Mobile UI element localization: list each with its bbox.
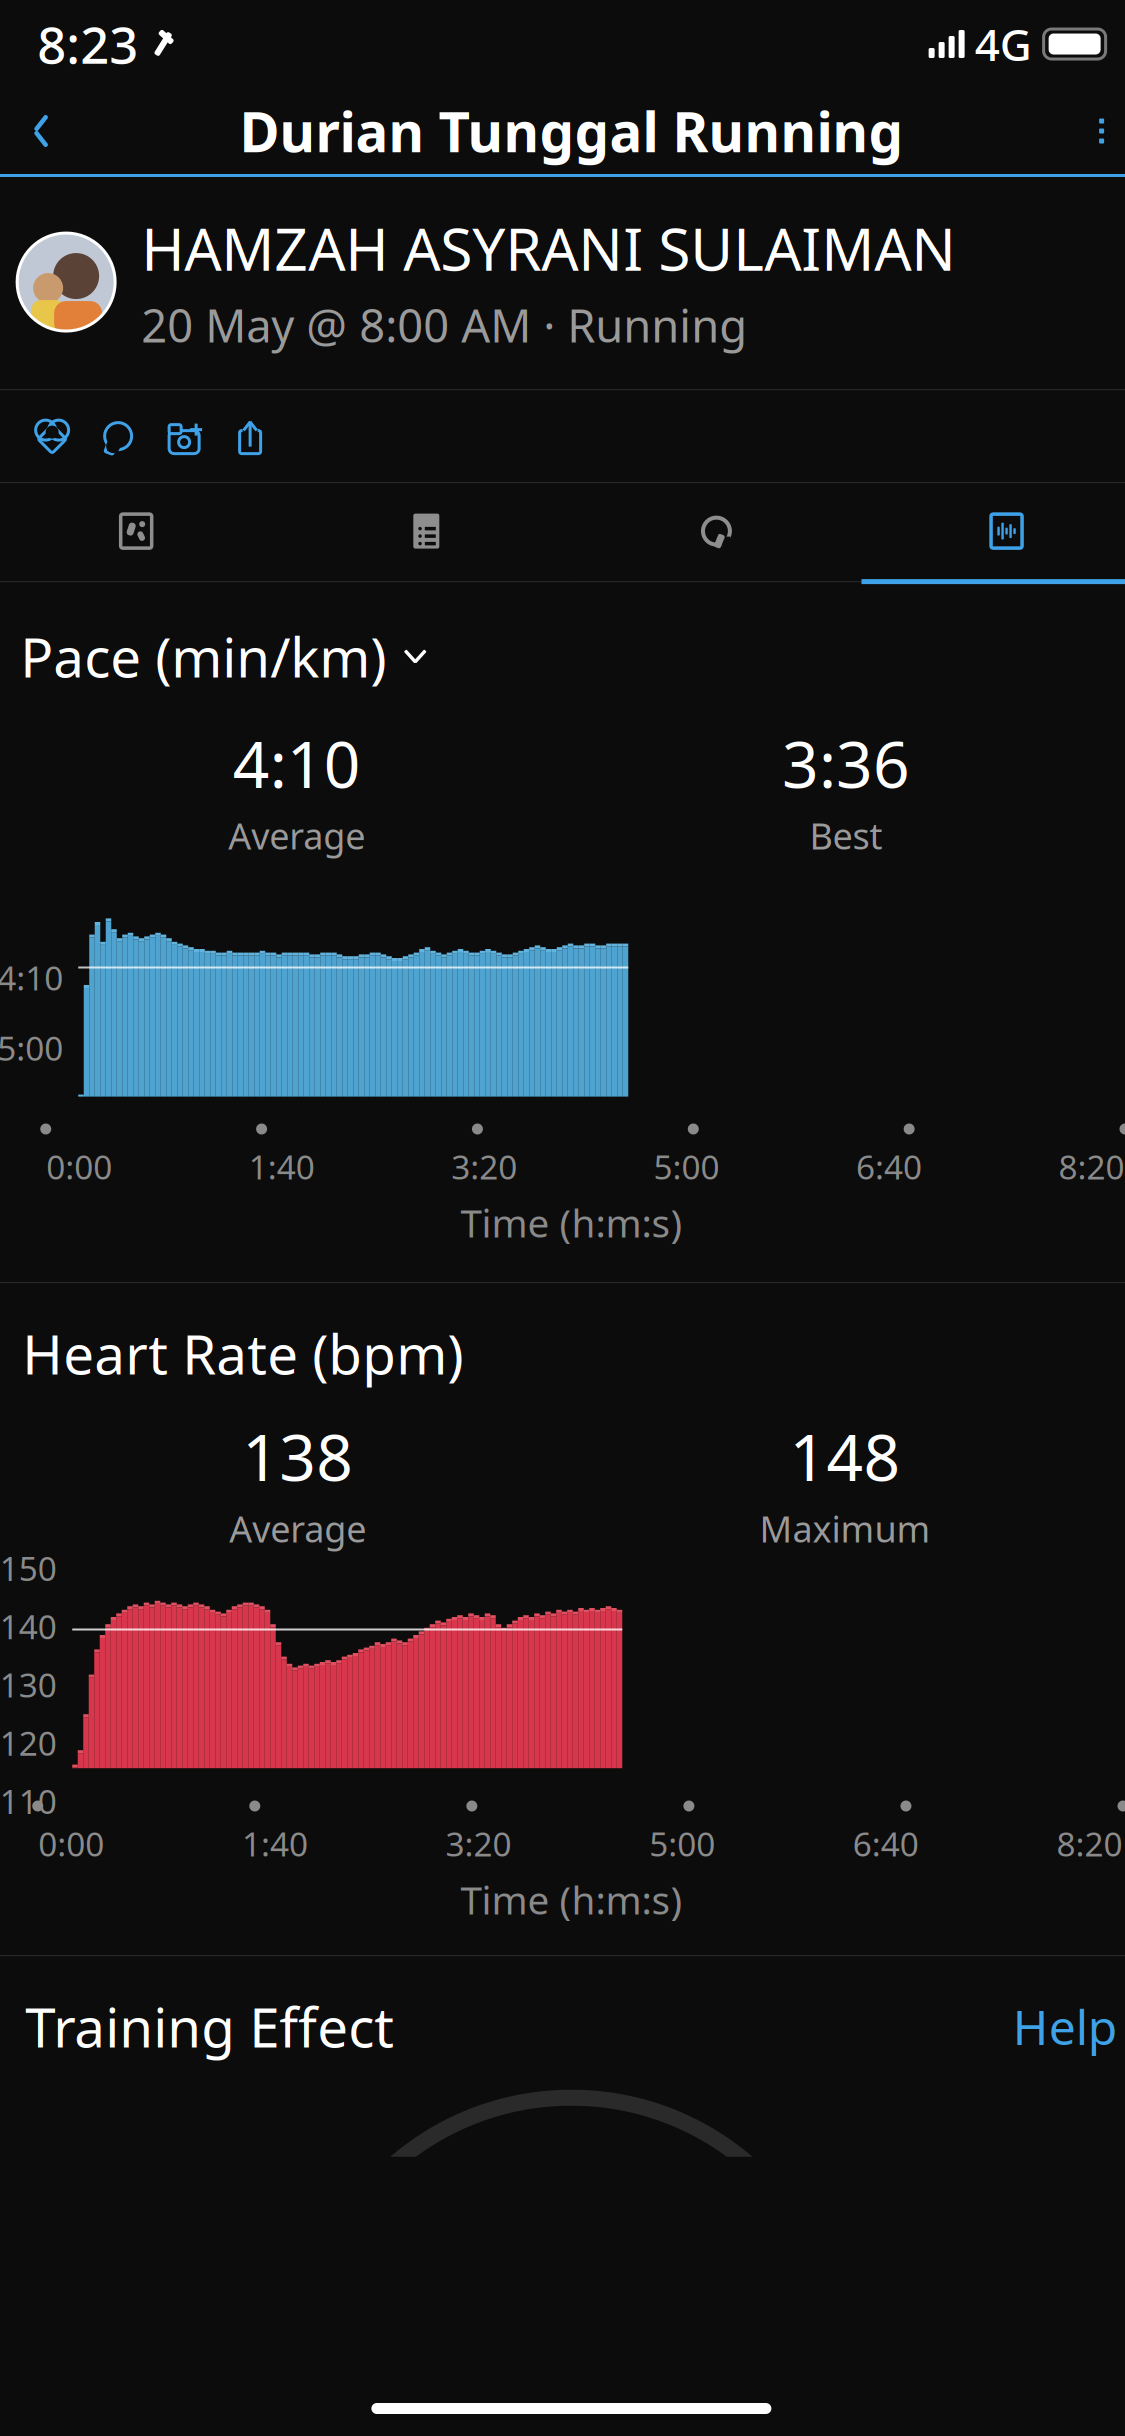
- staticText: 0:00: [46, 1144, 112, 1189]
- button[interactable]: Give kudos: [19, 393, 85, 479]
- staticText: 110: [0, 1779, 57, 1823]
- staticText: 6:40: [853, 1821, 919, 1866]
- button[interactable]: Add photo: [151, 393, 217, 479]
- staticText: Average: [228, 812, 365, 859]
- staticText: 5:00: [649, 1821, 715, 1866]
- staticText: Durian Tunggal Running: [239, 95, 903, 167]
- button[interactable]: Share: [217, 393, 283, 479]
- staticText: 6:40: [856, 1144, 922, 1189]
- staticText: 140: [0, 1604, 57, 1648]
- staticText: 0:00: [38, 1821, 104, 1866]
- button[interactable]: Comment: [85, 393, 151, 479]
- staticText: 5:00: [654, 1144, 720, 1189]
- button[interactable]: Charts: [861, 483, 1125, 579]
- staticText: 3:20: [451, 1144, 517, 1189]
- staticText: Average: [229, 1505, 366, 1552]
- staticText: Time (h:m:s): [460, 1197, 682, 1248]
- staticText: Help: [1013, 1994, 1118, 2058]
- button[interactable]: Map: [0, 483, 281, 579]
- button[interactable]: Help: [1013, 1994, 1118, 2058]
- staticText: 1:40: [249, 1144, 315, 1189]
- staticText: 20 May @ 8:00 AM · Running: [141, 295, 747, 355]
- staticText: Pace (min/km): [20, 620, 386, 693]
- staticText: HAMZAH ASYRANI SULAIMAN: [141, 209, 956, 287]
- staticText: 8:20: [1058, 1144, 1124, 1189]
- staticText: 4:10: [0, 955, 63, 1000]
- staticText: Time (h:m:s): [460, 1874, 682, 1925]
- staticText: 148: [789, 1414, 900, 1499]
- staticText: Best: [809, 812, 882, 859]
- button[interactable]: Pace (min/km): [0, 584, 1125, 703]
- staticText: 8:20: [1056, 1821, 1122, 1866]
- staticText: 8:23: [37, 10, 138, 78]
- staticText: 150: [0, 1546, 57, 1590]
- button[interactable]: Laps: [571, 483, 861, 579]
- staticText: 120: [0, 1721, 57, 1765]
- staticText: 1:40: [242, 1821, 308, 1866]
- staticText: 4G: [975, 15, 1032, 73]
- button[interactable]: Back: [0, 88, 87, 174]
- button[interactable]: More options: [1056, 88, 1125, 174]
- staticText: 5:00: [0, 1026, 63, 1070]
- button[interactable]: Details: [281, 483, 571, 579]
- staticText: 4:10: [233, 721, 361, 806]
- staticText: 3:20: [445, 1821, 511, 1866]
- staticText: Training Effect: [25, 1990, 394, 2063]
- staticText: 3:36: [782, 721, 910, 806]
- staticText: 138: [242, 1414, 353, 1499]
- staticText: Maximum: [759, 1505, 930, 1552]
- staticText: Heart Rate (bpm): [22, 1317, 463, 1390]
- staticText: 130: [0, 1662, 57, 1707]
